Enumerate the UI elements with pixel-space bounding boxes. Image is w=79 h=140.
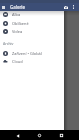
button[interactable]: Zařízení • Globál <box>0 49 64 58</box>
staticText: Videa <box>12 29 23 34</box>
button[interactable]: Recent apps <box>57 131 66 140</box>
staticText: Alba <box>12 12 21 17</box>
staticText: Oblíbené <box>12 21 29 26</box>
button[interactable]: Home <box>35 131 44 140</box>
button[interactable]: Videa <box>0 27 64 36</box>
button[interactable]: Alba <box>0 10 64 19</box>
staticText: Archiv <box>3 41 14 46</box>
button[interactable]: Cloud <box>0 57 64 66</box>
button[interactable]: Open navigation drawer <box>0 3 7 11</box>
staticText: Galerie <box>10 4 25 10</box>
button[interactable]: Oblíbené <box>0 19 64 28</box>
staticText: Zařízení • Globál <box>12 51 42 56</box>
staticText: Cloud <box>12 59 23 64</box>
button[interactable]: Back <box>13 131 22 140</box>
button[interactable]: More options <box>70 3 77 11</box>
button[interactable]: Camera <box>62 3 70 11</box>
